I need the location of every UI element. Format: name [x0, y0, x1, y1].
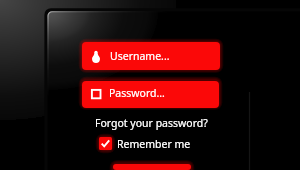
staticText: Password...: [109, 86, 165, 100]
staticText: Remember me: [117, 137, 191, 150]
button[interactable]: Log in: [113, 164, 191, 170]
button[interactable]: Forgot your password?: [82, 115, 220, 130]
staticText: Forgot your password?: [95, 116, 208, 130]
button[interactable]: Remember me: [99, 137, 191, 150]
staticText: Username...: [110, 49, 170, 63]
button[interactable]: Username...: [82, 42, 220, 70]
button[interactable]: Password...: [82, 81, 219, 108]
